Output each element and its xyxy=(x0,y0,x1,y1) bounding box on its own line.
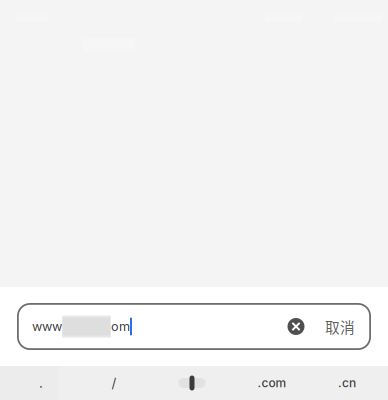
staticText: / xyxy=(111,375,116,391)
staticText: . xyxy=(39,375,43,391)
staticText: .com xyxy=(257,376,286,390)
button[interactable]: .cn xyxy=(306,366,388,400)
staticText: www xyxy=(32,319,62,334)
staticText: om xyxy=(111,319,130,334)
button[interactable]: .com xyxy=(238,366,306,400)
staticText: 取消 xyxy=(325,316,355,337)
button[interactable]: / xyxy=(82,366,146,400)
button[interactable]: 取消 xyxy=(317,304,363,348)
staticText: .cn xyxy=(338,376,356,390)
button[interactable]: . xyxy=(0,366,82,400)
button[interactable]: Clear text xyxy=(275,304,317,348)
button[interactable]: Keyboard key xyxy=(146,366,238,400)
